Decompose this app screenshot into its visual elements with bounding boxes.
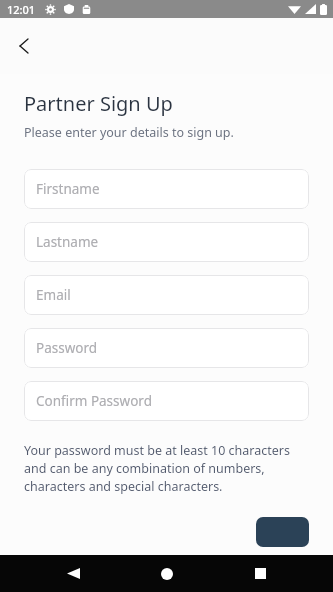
button[interactable]: Back: [53, 555, 93, 592]
button[interactable]: Password: [24, 328, 309, 368]
button[interactable]: Email: [24, 275, 309, 315]
button[interactable]: Recent apps: [240, 555, 280, 592]
button[interactable]: Continue: [256, 517, 309, 547]
button[interactable]: Confirm Password: [24, 381, 309, 421]
button[interactable]: Back: [4, 26, 44, 66]
button[interactable]: Home: [147, 555, 187, 592]
staticText: Please enter your details to sign up.: [24, 124, 234, 141]
staticText: 12:01: [7, 2, 36, 17]
staticText: Confirm Password: [36, 392, 152, 410]
button[interactable]: Lastname: [24, 222, 309, 262]
staticText: Password: [36, 339, 98, 357]
staticText: Email: [36, 286, 71, 304]
staticText: Lastname: [36, 233, 99, 251]
staticText: Your password must be at least 10 charac…: [24, 442, 309, 495]
button[interactable]: Firstname: [24, 169, 309, 209]
staticText: Partner Sign Up: [24, 90, 173, 117]
staticText: Firstname: [36, 180, 100, 198]
